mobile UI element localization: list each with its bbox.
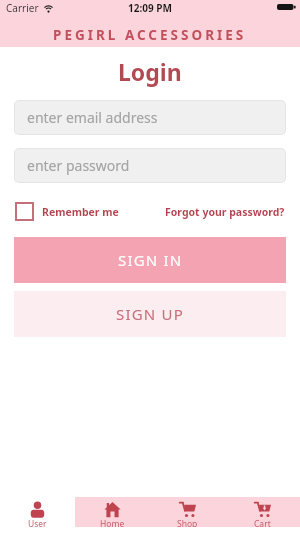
button[interactable]: enter email address — [14, 100, 286, 135]
staticText: Login — [118, 56, 182, 87]
staticText: Carrier — [6, 1, 39, 15]
button[interactable]: enter password — [14, 148, 286, 183]
staticText: PEGIRL ACCESSORIES — [53, 26, 247, 44]
button[interactable]: User — [0, 497, 75, 527]
staticText: Cart — [254, 518, 271, 527]
staticText: 12:09 PM — [128, 1, 172, 15]
staticText: enter password — [27, 156, 130, 175]
staticText: Home — [100, 518, 125, 527]
staticText: SIGN IN — [118, 250, 183, 270]
button[interactable]: Shop — [150, 497, 225, 527]
button[interactable]: SIGN UP — [14, 291, 286, 337]
staticText: Remember me — [42, 205, 119, 219]
staticText: User — [28, 518, 47, 527]
button[interactable]: Forgot your password? — [165, 205, 285, 219]
button[interactable]: Cart — [225, 497, 300, 527]
button[interactable]: Home — [75, 497, 150, 527]
staticText: Shop — [177, 518, 198, 527]
button[interactable] — [15, 202, 34, 221]
staticText: SIGN UP — [116, 304, 184, 324]
button[interactable]: SIGN IN — [14, 237, 286, 283]
staticText: enter email address — [27, 108, 158, 127]
